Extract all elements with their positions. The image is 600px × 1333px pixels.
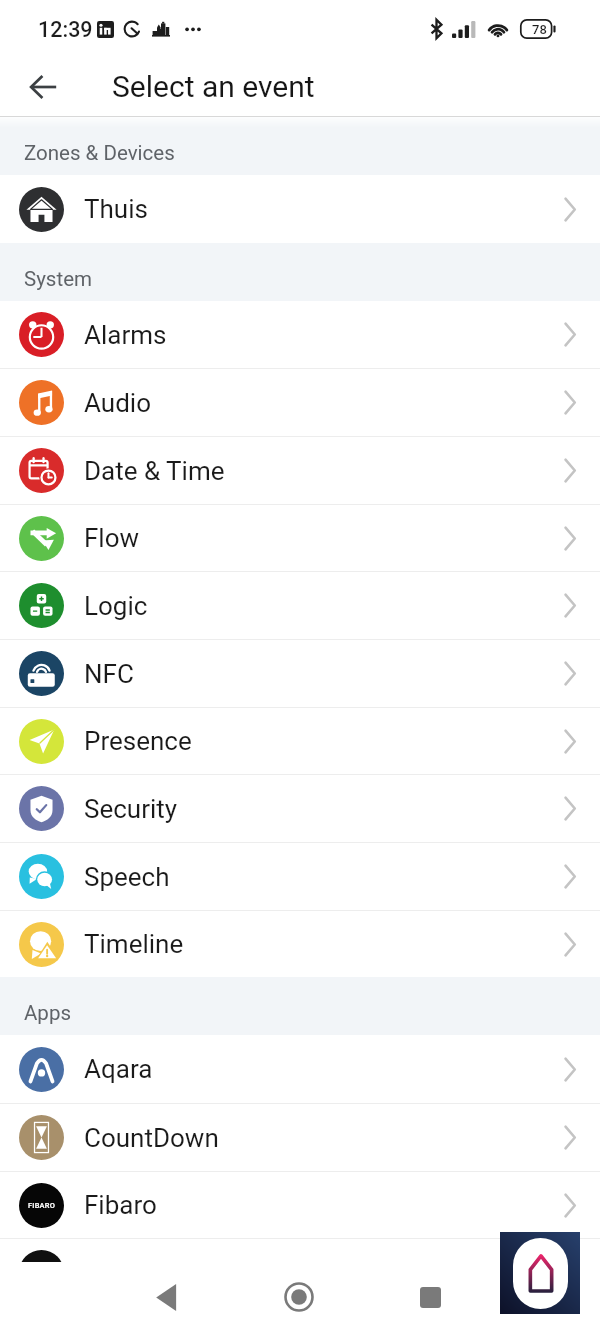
- staticText: Select an event: [112, 69, 315, 104]
- button[interactable]: Alarms: [0, 301, 600, 368]
- button[interactable]: Hue: [0, 1239, 600, 1262]
- staticText: Aqara: [84, 1054, 153, 1084]
- button[interactable]: Security: [0, 775, 600, 842]
- button[interactable]: Speech: [0, 843, 600, 910]
- staticText: Flow: [84, 523, 140, 553]
- staticText: FIBARO: [28, 1201, 56, 1210]
- button[interactable]: Date & Time: [0, 437, 600, 504]
- button[interactable]: Home: [266, 1262, 332, 1332]
- button[interactable]: Presence: [0, 708, 600, 774]
- button[interactable]: Homey app: [500, 1232, 580, 1314]
- button[interactable]: Audio: [0, 369, 600, 436]
- button[interactable]: Aqara: [0, 1035, 600, 1103]
- staticText: System: [24, 267, 93, 291]
- staticText: Logic: [84, 591, 148, 621]
- staticText: NFC: [84, 659, 134, 689]
- staticText: Fibaro: [84, 1190, 157, 1220]
- staticText: Presence: [84, 726, 192, 756]
- staticText: CountDown: [84, 1123, 219, 1153]
- button[interactable]: FIBARO: [0, 1172, 600, 1238]
- button[interactable]: NFC: [0, 640, 600, 707]
- staticText: Thuis: [84, 194, 148, 224]
- staticText: Zones & Devices: [24, 141, 175, 165]
- staticText: Alarms: [84, 320, 167, 350]
- staticText: Date & Time: [84, 456, 225, 486]
- staticText: Security: [84, 794, 178, 824]
- button[interactable]: Timeline: [0, 911, 600, 977]
- button[interactable]: Back: [0, 58, 86, 116]
- staticText: Apps: [24, 1001, 71, 1025]
- button[interactable]: Flow: [0, 505, 600, 571]
- staticText: Audio: [84, 388, 151, 418]
- button[interactable]: Recents: [397, 1262, 463, 1332]
- button[interactable]: CountDown: [0, 1104, 600, 1171]
- staticText: Timeline: [84, 929, 184, 959]
- button[interactable]: Logic: [0, 572, 600, 639]
- staticText: 12:39: [38, 17, 93, 42]
- staticText: 78: [532, 22, 547, 37]
- button[interactable]: Back: [134, 1262, 200, 1332]
- staticText: Speech: [84, 862, 170, 892]
- button[interactable]: Thuis: [0, 175, 600, 243]
